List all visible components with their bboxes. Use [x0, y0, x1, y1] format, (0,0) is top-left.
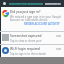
other: Notification icon [3, 2, 6, 5]
staticText: Tap to sign in to the network [10, 52, 47, 56]
staticText: REVIEW ACCOUNT ACTIVITY [24, 22, 60, 26]
staticText: Did you just sign in? [10, 10, 41, 14]
staticText: Wi-Fi login required [10, 47, 40, 51]
staticText: mmmmmmmmmmm [9, 2, 44, 6]
button[interactable]: REVIEW ACCOUNT ACTIVITY [23, 22, 61, 26]
staticText: now [56, 34, 62, 38]
button[interactable]: Screenshot thumbnail [1, 32, 64, 44]
staticText: We noticed a new sign-in to your Google … [10, 15, 61, 22]
staticText: Tap to view or share your screenshot [10, 39, 55, 43]
staticText: Screenshot captured [10, 34, 42, 38]
staticText: now [56, 47, 62, 51]
button[interactable]: Wi-Fi login required [1, 45, 64, 57]
staticText: mmmmmmm [45, 2, 62, 6]
button[interactable]: Did you just sign in? [1, 7, 64, 31]
